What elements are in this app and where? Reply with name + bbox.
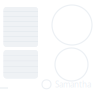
staticText: Samantha xyxy=(55,79,91,90)
button[interactable]: Progress ring xyxy=(52,5,92,45)
button[interactable]: Activity ring xyxy=(55,48,88,81)
button[interactable]: Samantha xyxy=(42,79,91,90)
button[interactable] xyxy=(3,7,38,47)
